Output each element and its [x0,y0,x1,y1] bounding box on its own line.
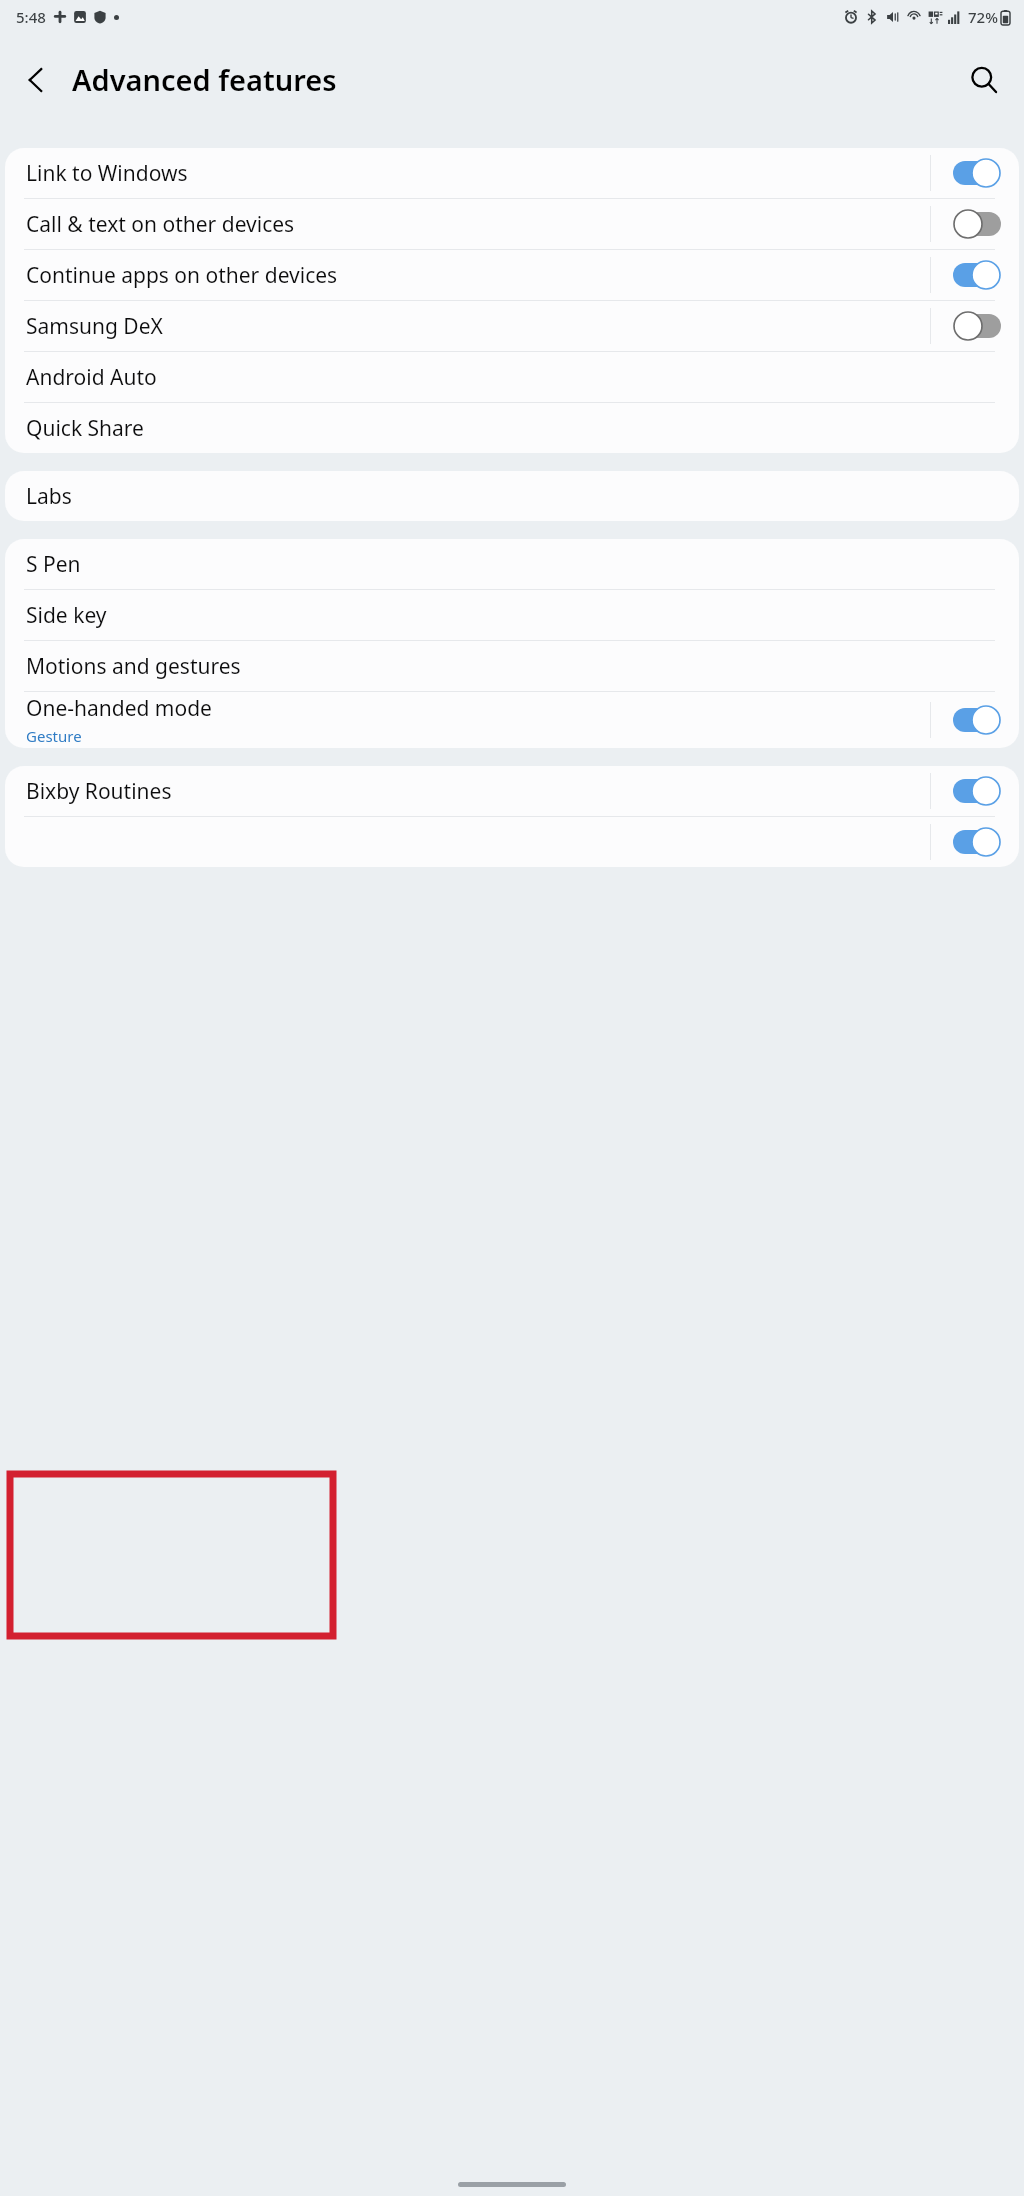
staticText: S Pen [26,550,81,579]
button[interactable]: Motions and gestures [5,641,1019,691]
button[interactable]: Quick Share [5,403,1019,453]
button[interactable]: S Pen [5,539,1019,589]
button[interactable]: Toggle on [953,776,1001,806]
button[interactable]: Android Auto [5,352,1019,402]
button[interactable]: Side key [5,590,1019,640]
button[interactable]: Samsung DeX [5,301,1019,351]
button[interactable]: Search [956,52,1012,108]
staticText: Call & text on other devices [26,210,295,239]
button[interactable]: Toggle on [5,817,1019,867]
button[interactable]: Toggle on [953,158,1001,188]
staticText: Continue apps on other devices [26,261,338,290]
staticText: Side key [26,601,107,630]
button[interactable]: Back [8,52,64,108]
staticText: Quick Share [26,414,144,443]
staticText: Advanced features [72,60,337,99]
staticText: 5:48 [16,7,46,27]
staticText: Bixby Routines [26,777,172,806]
button[interactable]: Toggle on [953,260,1001,290]
button[interactable]: One-handed mode [5,692,1019,748]
button[interactable]: Labs [5,471,1019,521]
button[interactable]: Toggle off [953,311,1001,341]
staticText: Labs [26,482,72,511]
button[interactable]: Continue apps on other devices [5,250,1019,300]
button[interactable]: Call & text on other devices [5,199,1019,249]
button[interactable]: Toggle off [953,209,1001,239]
staticText: One-handed mode [26,694,212,723]
button[interactable]: Toggle on [953,705,1001,735]
staticText: Android Auto [26,363,157,392]
staticText: Gesture [26,726,82,746]
button[interactable]: Link to Windows [5,148,1019,198]
button[interactable]: Toggle on [953,827,1001,857]
button[interactable]: Bixby Routines [5,766,1019,816]
staticText: Motions and gestures [26,652,241,681]
staticText: Samsung DeX [26,312,163,341]
staticText: 72% [968,7,998,27]
staticText: Link to Windows [26,159,188,188]
